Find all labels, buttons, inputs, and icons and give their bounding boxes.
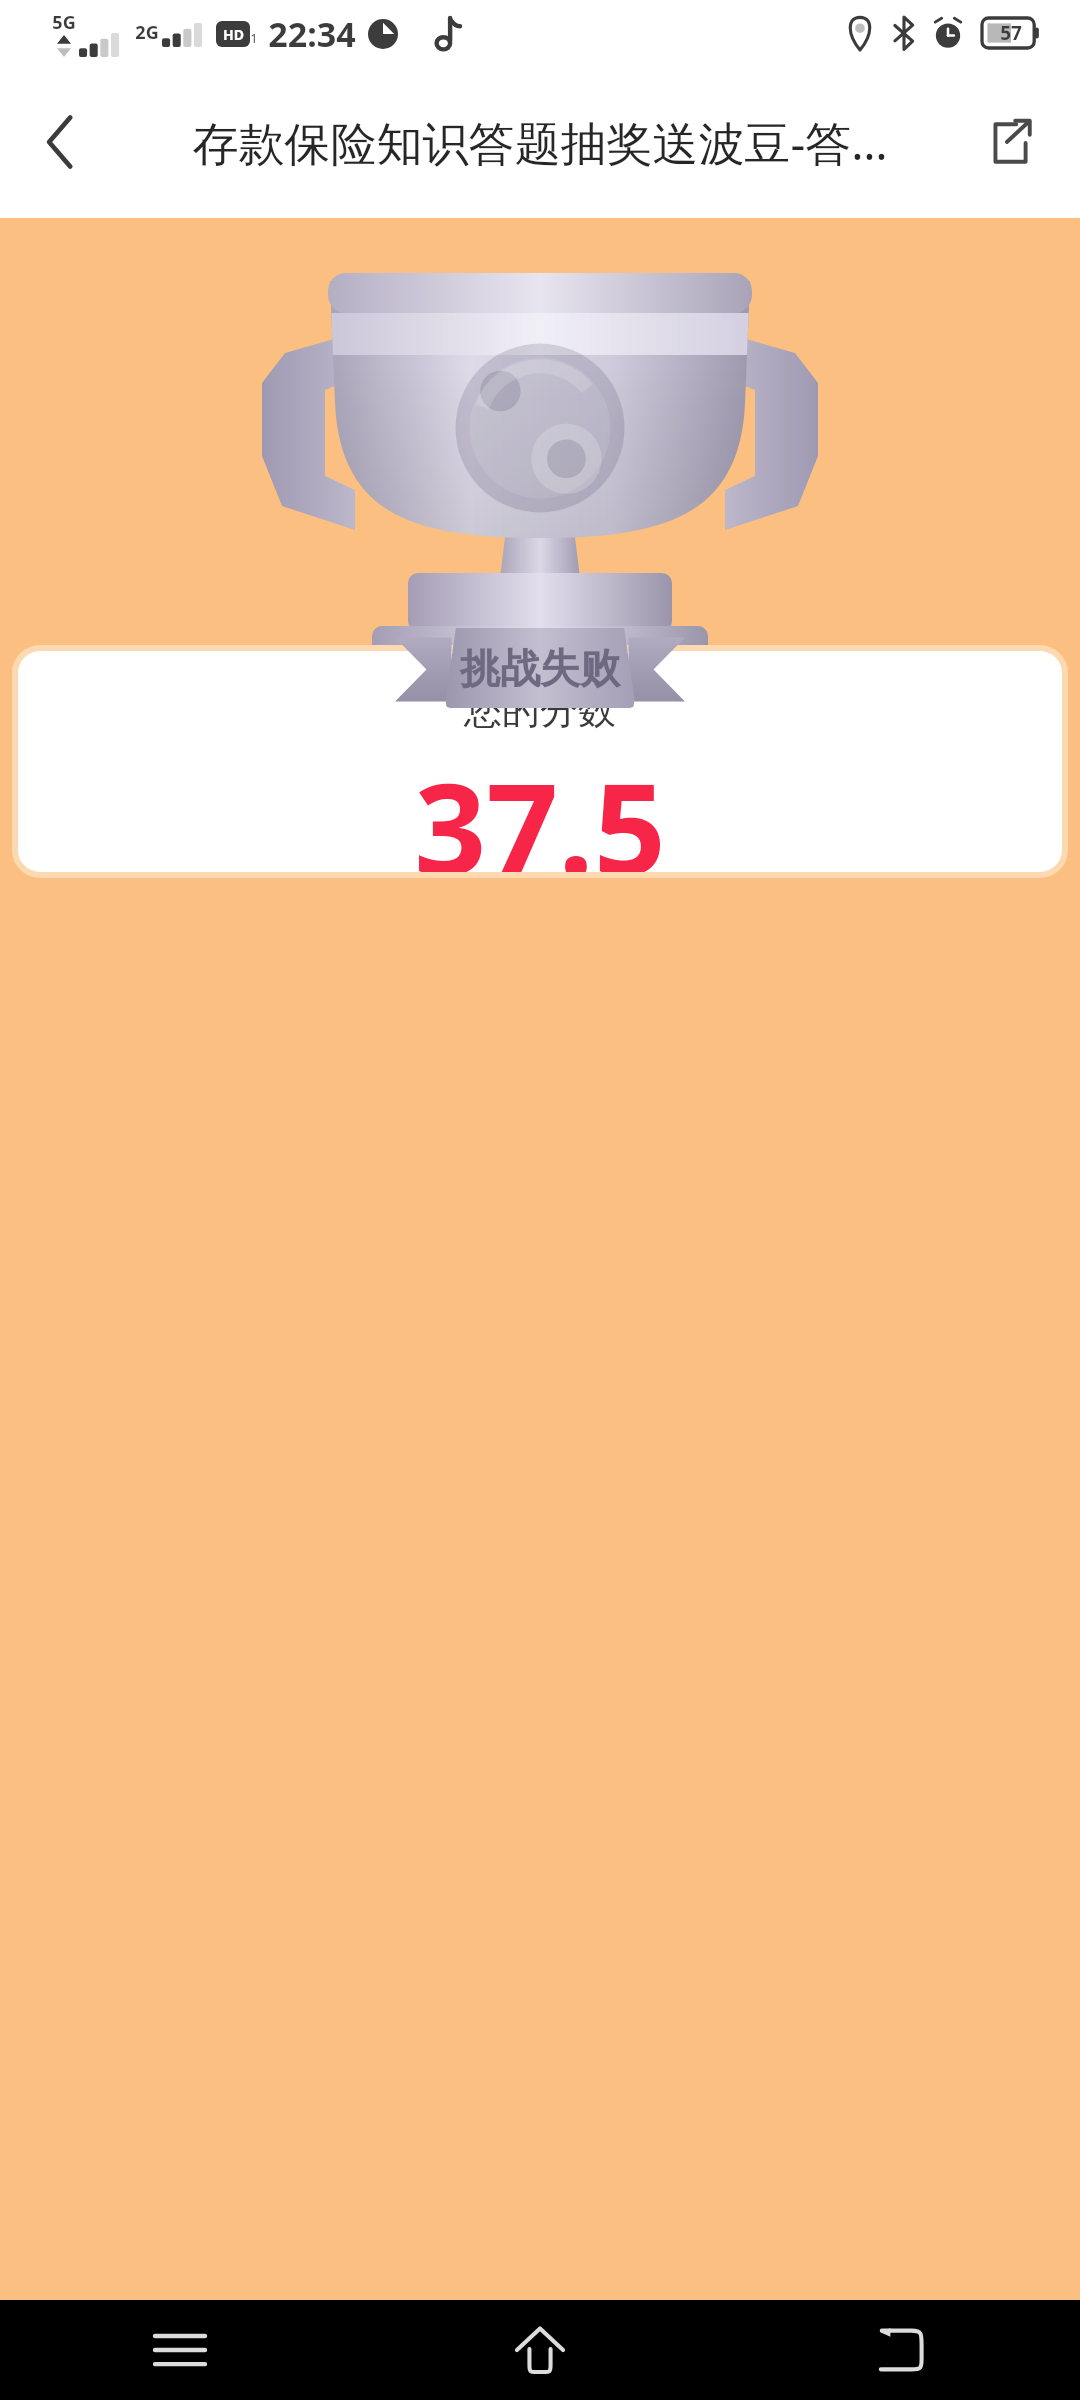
button[interactable]: Home [360, 2300, 720, 2400]
button[interactable]: Recents [0, 2300, 360, 2400]
staticText: 37.5 [414, 740, 666, 872]
staticText: 5G [52, 10, 76, 35]
staticText: 存款保险知识答题抽奖送波豆-答… [192, 111, 888, 174]
staticText: HD [223, 25, 244, 44]
staticText: 2G [135, 20, 159, 45]
button[interactable]: Back [18, 100, 102, 184]
button[interactable]: Share [968, 100, 1052, 184]
button[interactable]: Back [720, 2300, 1080, 2400]
staticText: 您的分数 [464, 686, 616, 734]
staticText: 1 [250, 29, 258, 47]
button[interactable]: 您的分数 [18, 651, 1062, 872]
staticText: 22:34 [268, 11, 356, 57]
staticText: 57 [1000, 20, 1022, 46]
staticText: 挑战失败 [460, 643, 620, 693]
